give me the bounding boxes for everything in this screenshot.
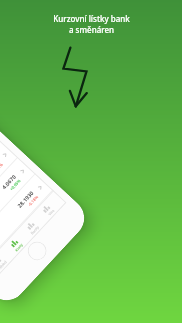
staticText: Banky xyxy=(29,224,41,235)
staticText: -0.18% xyxy=(27,194,39,207)
staticText: 4.0670 xyxy=(0,173,17,191)
staticText: -0.41% xyxy=(0,162,4,175)
staticText: Kurzy xyxy=(14,242,24,252)
staticText: Kurzovní lístky bank a směnáren xyxy=(53,13,130,36)
button[interactable]: USD xyxy=(0,125,1,222)
button[interactable]: USD xyxy=(0,141,18,239)
button[interactable]: Banky xyxy=(23,218,40,235)
staticText: 28.1930 xyxy=(16,189,35,209)
staticText: +0.05% xyxy=(9,178,22,192)
button[interactable]: USD xyxy=(0,174,53,271)
button[interactable]: USD xyxy=(0,157,36,255)
button[interactable]: Kurzy xyxy=(7,235,24,252)
button[interactable]: Více xyxy=(40,202,55,217)
staticText: Přehled xyxy=(0,259,8,272)
staticText: Více xyxy=(47,208,55,216)
button[interactable]: Přehled xyxy=(0,253,8,272)
